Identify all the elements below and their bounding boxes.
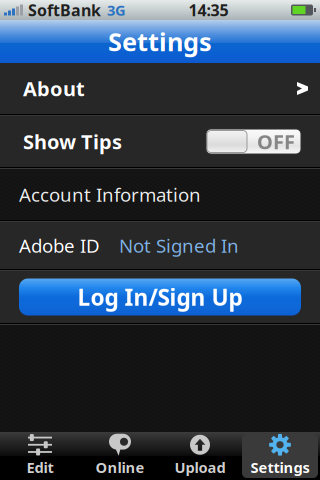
button[interactable]: Upload: [160, 432, 240, 480]
button[interactable]: Online: [80, 432, 160, 480]
staticText: Upload: [174, 457, 225, 477]
staticText: Edit: [26, 457, 53, 477]
button[interactable]: Edit: [0, 432, 80, 480]
staticText: Not Signed In: [119, 233, 239, 258]
button[interactable]: About: [0, 63, 320, 114]
staticText: Show Tips: [23, 128, 122, 155]
button[interactable]: Log In/Sign Up: [0, 271, 320, 323]
staticText: Account Information: [19, 182, 201, 207]
staticText: About: [23, 75, 85, 102]
staticText: Online: [95, 457, 144, 477]
staticText: Log In/Sign Up: [77, 282, 242, 312]
staticText: SoftBank: [28, 0, 101, 21]
staticText: Settings: [250, 457, 309, 477]
staticText: Adobe ID: [19, 233, 100, 258]
staticText: Settings: [108, 25, 212, 58]
button[interactable]: Not Signed In: [100, 233, 239, 258]
staticText: 3G: [107, 0, 126, 20]
staticText: OFF: [257, 128, 295, 155]
button[interactable]: Settings: [240, 432, 320, 480]
button[interactable]: Show Tips toggle, off: [206, 129, 301, 154]
staticText: 14:35: [188, 0, 228, 21]
